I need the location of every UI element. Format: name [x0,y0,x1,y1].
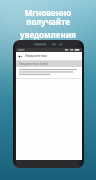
staticText: уведомления [20,29,76,40]
staticText: Уведомления [25,54,47,58]
button[interactable]: Назад [13,40,84,168]
button[interactable]: Назад [18,54,23,59]
staticText: Мгновенно получайте [3,7,93,28]
button[interactable]: Уведомления Tadet [16,61,82,67]
button[interactable]: Назад [16,52,82,60]
button[interactable] [19,69,79,78]
staticText: Уведомления Tadet [19,62,48,66]
